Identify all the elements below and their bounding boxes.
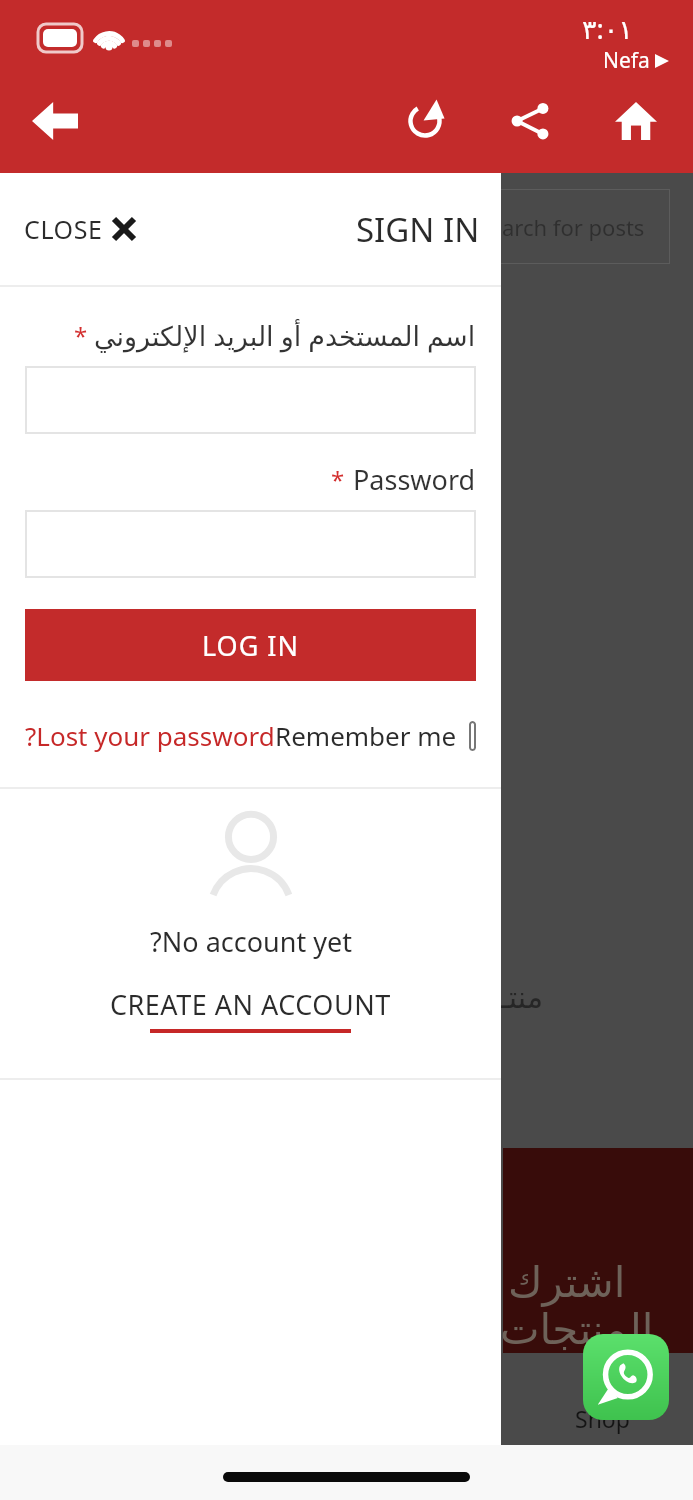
- staticText: المنتجات: [500, 1305, 654, 1354]
- button[interactable]: Refresh: [394, 90, 456, 152]
- button[interactable]: Share: [499, 90, 561, 152]
- staticText: ?No account yet: [150, 923, 352, 960]
- staticText: ٣:٠١: [582, 10, 633, 47]
- staticText: arch for posts: [502, 212, 645, 242]
- button[interactable]: [25, 510, 476, 578]
- button[interactable]: [25, 366, 476, 434]
- button[interactable]: LOG IN: [25, 609, 476, 681]
- staticText: *: [74, 319, 88, 352]
- staticText: اشترك: [508, 1258, 626, 1307]
- staticText: Password: [353, 461, 476, 498]
- staticText: CREATE AN ACCOUNT: [110, 986, 391, 1023]
- staticText: اسم المستخدم أو البريد الإلكتروني: [94, 317, 476, 354]
- staticText: منتـ: [500, 980, 543, 1015]
- staticText: Remember me: [275, 718, 457, 753]
- staticText: CLOSE: [24, 212, 103, 246]
- button[interactable]: CREATE AN ACCOUNT: [110, 986, 391, 1033]
- staticText: LOG IN: [202, 627, 300, 664]
- staticText: ?Lost your password: [25, 718, 275, 753]
- button[interactable]: Home: [605, 90, 667, 152]
- button[interactable]: Back: [24, 93, 86, 149]
- button[interactable]: ?Lost your password: [25, 718, 275, 753]
- button[interactable]: WhatsApp: [583, 1334, 669, 1420]
- staticText: *: [331, 463, 345, 496]
- staticText: Nefa: [603, 46, 650, 75]
- button[interactable]: Remember me: [275, 718, 476, 753]
- staticText: Shop: [575, 1403, 630, 1434]
- staticText: SIGN IN: [356, 207, 480, 252]
- button[interactable]: CLOSE: [16, 204, 143, 254]
